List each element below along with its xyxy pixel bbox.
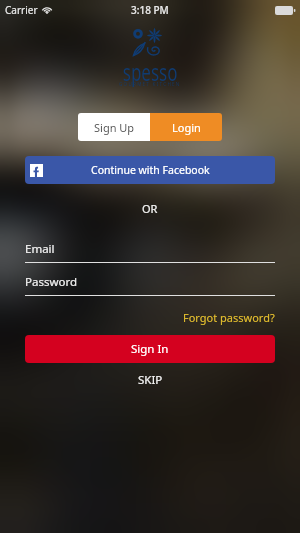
button[interactable]: Login: [150, 113, 222, 141]
staticText: GOURMET KITCHEN: [119, 81, 181, 87]
button[interactable]: Forgot password?: [183, 310, 275, 325]
button[interactable]: Sign In: [25, 335, 275, 363]
button[interactable]: Sign Up: [78, 113, 150, 141]
staticText: spesso: [123, 56, 178, 87]
staticText: Sign Up: [94, 120, 135, 135]
staticText: Login: [172, 120, 201, 135]
staticText: OR: [142, 201, 158, 216]
staticText: Carrier: [5, 3, 38, 17]
staticText: Continue with Facebook: [91, 163, 210, 177]
staticText: Sign In: [131, 341, 169, 357]
button[interactable]: Continue with Facebook: [25, 156, 275, 184]
button[interactable]: SKIP: [138, 372, 163, 388]
staticText: Email: [25, 241, 55, 257]
staticText: 3:18 PM: [131, 3, 169, 17]
staticText: Password: [25, 274, 78, 290]
